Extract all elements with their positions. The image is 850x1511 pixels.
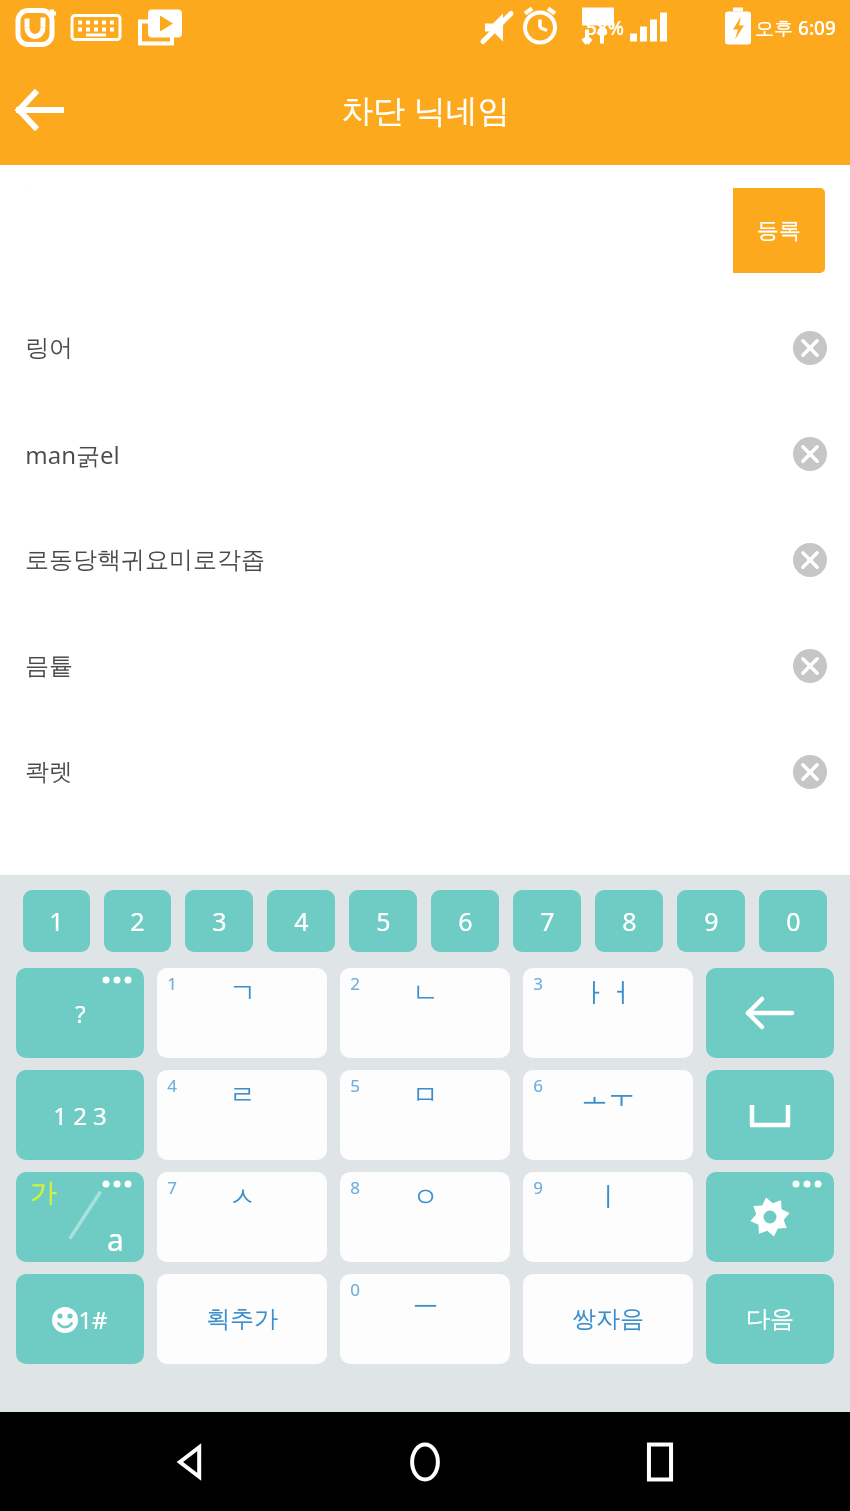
button[interactable]: 0: [759, 890, 827, 952]
staticText: a: [107, 1219, 124, 1260]
button[interactable]: 1: [23, 890, 90, 952]
button[interactable]: 7: [157, 1172, 327, 1262]
staticText: ㅏㅓ: [581, 976, 635, 1010]
staticText: 다음: [746, 1304, 794, 1334]
button[interactable]: 9: [677, 890, 745, 952]
staticText: 1#: [78, 1303, 108, 1336]
staticText: 획추가: [206, 1304, 278, 1334]
button[interactable]: 2: [104, 890, 171, 952]
button[interactable]: Change language: [16, 1172, 144, 1262]
staticText: man굵el: [25, 438, 120, 471]
staticText: 9: [533, 1176, 543, 1199]
staticText: 58%: [586, 15, 624, 41]
button[interactable]: 획추가: [157, 1274, 327, 1364]
staticText: 링어: [25, 333, 73, 363]
staticText: ㄴ: [412, 976, 439, 1010]
staticText: 7: [540, 904, 555, 938]
staticText: 1: [49, 904, 64, 938]
button[interactable]: 3: [523, 968, 693, 1058]
button[interactable]: 5: [349, 890, 417, 952]
staticText: 0: [350, 1278, 360, 1301]
button[interactable]: 8: [595, 890, 663, 952]
staticText: ㄱ: [229, 976, 256, 1010]
button[interactable]: 콱렛: [0, 719, 850, 825]
button[interactable]: 6: [523, 1070, 693, 1160]
staticText: 콱렛: [25, 757, 73, 787]
button[interactable]: Delete 콱렛: [780, 742, 840, 802]
button[interactable]: 7: [513, 890, 581, 952]
button[interactable]: Back: [145, 1417, 235, 1507]
button[interactable]: Emoji and symbols: [16, 1274, 144, 1364]
button[interactable]: 2: [340, 968, 510, 1058]
staticText: ㅡ: [412, 1282, 439, 1316]
button[interactable]: Settings: [706, 1172, 834, 1262]
button[interactable]: Recent apps: [615, 1417, 705, 1507]
button[interactable]: 4: [267, 890, 335, 952]
staticText: 로동당핵귀요미로각좁: [25, 545, 265, 575]
staticText: 등록: [757, 217, 801, 245]
button[interactable]: 다음: [706, 1274, 834, 1364]
staticText: 오후 6:09: [755, 15, 836, 41]
staticText: 1: [167, 972, 177, 995]
staticText: 4: [294, 904, 309, 938]
button[interactable]: 0: [340, 1274, 510, 1364]
button[interactable]: Back: [0, 70, 80, 150]
staticText: 9: [704, 904, 719, 938]
staticText: 0: [786, 904, 801, 938]
staticText: 3: [533, 972, 543, 995]
staticText: 7: [167, 1176, 177, 1199]
button[interactable]: 로동당핵귀요미로각좁: [0, 507, 850, 613]
staticText: 2: [130, 904, 145, 938]
button[interactable]: Space: [706, 1070, 834, 1160]
button[interactable]: ?: [16, 968, 144, 1058]
staticText: 2: [350, 972, 360, 995]
button[interactable]: Delete man굵el: [780, 424, 840, 484]
staticText: 6: [533, 1074, 543, 1097]
button[interactable]: Delete 로동당핵귀요미로각좁: [780, 530, 840, 590]
staticText: 쌍자음: [572, 1304, 644, 1334]
button[interactable]: 3: [185, 890, 253, 952]
staticText: ㅅ: [229, 1180, 256, 1214]
staticText: ㅣ: [595, 1180, 622, 1214]
staticText: 6: [458, 904, 473, 938]
staticText: ㅗㅜ: [581, 1078, 635, 1112]
staticText: ㄹ: [229, 1078, 256, 1112]
staticText: ㅁ: [412, 1078, 439, 1112]
button[interactable]: 1: [157, 968, 327, 1058]
button[interactable]: 6: [431, 890, 499, 952]
staticText: ㅇ: [412, 1180, 439, 1214]
staticText: 1 2 3: [53, 1099, 107, 1132]
button[interactable]: 9: [523, 1172, 693, 1262]
button[interactable]: Home: [380, 1417, 470, 1507]
button[interactable]: 8: [340, 1172, 510, 1262]
staticText: 8: [350, 1176, 360, 1199]
button[interactable]: Delete 링어: [780, 318, 840, 378]
staticText: 3: [212, 904, 227, 938]
button[interactable]: 5: [340, 1070, 510, 1160]
button[interactable]: 등록: [733, 188, 825, 273]
button[interactable]: man굵el: [0, 401, 850, 507]
staticText: 5: [376, 904, 391, 938]
button[interactable]: 링어: [0, 295, 850, 401]
staticText: 가: [30, 1176, 57, 1210]
button[interactable]: Delete 믐튵: [780, 636, 840, 696]
button[interactable]: 1 2 3: [16, 1070, 144, 1160]
staticText: ?: [75, 997, 86, 1030]
button[interactable]: 4: [157, 1070, 327, 1160]
staticText: 믐튵: [25, 651, 73, 681]
button[interactable]: Backspace: [706, 968, 834, 1058]
button[interactable]: 쌍자음: [523, 1274, 693, 1364]
button[interactable]: 믐튵: [0, 613, 850, 719]
staticText: 5: [350, 1074, 360, 1097]
staticText: 4: [167, 1074, 177, 1097]
staticText: 8: [622, 904, 637, 938]
staticText: 차단 닉네임: [341, 88, 510, 132]
